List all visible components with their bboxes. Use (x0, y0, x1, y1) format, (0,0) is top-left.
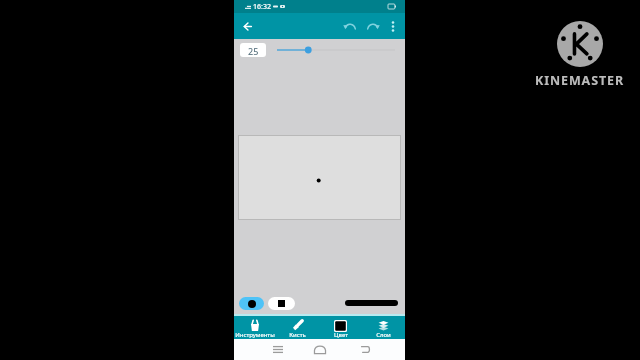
button[interactable]: Слои (362, 316, 405, 340)
staticText: Цвет (334, 331, 348, 339)
button[interactable]: Цвет (319, 316, 362, 340)
staticText: Кисть (289, 331, 306, 339)
staticText: 25 (248, 45, 259, 57)
button[interactable]: Brush size slider (275, 44, 397, 56)
button[interactable]: Инструменты (234, 316, 276, 340)
staticText: KINEMASTER (535, 72, 625, 89)
button[interactable]: Round brush (239, 297, 264, 310)
button[interactable]: Redo (361, 13, 384, 39)
button[interactable]: Back (354, 341, 377, 358)
button[interactable]: Undo (338, 13, 361, 39)
button[interactable]: Back (234, 13, 260, 39)
button[interactable]: Кисть (276, 316, 319, 340)
button[interactable]: Recents (266, 341, 289, 358)
button[interactable]: More options (384, 13, 402, 39)
staticText: 16:32 (253, 2, 271, 12)
staticText: Слои (376, 331, 391, 339)
button[interactable]: Home (308, 341, 331, 358)
staticText: Инструменты (235, 331, 275, 339)
button[interactable]: 25 (240, 43, 266, 57)
button[interactable]: Square brush (268, 297, 295, 310)
button[interactable]: Stroke preview (345, 300, 398, 306)
